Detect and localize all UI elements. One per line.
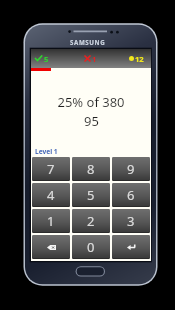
button[interactable]: 6 bbox=[112, 183, 150, 207]
staticText: 95 bbox=[84, 112, 99, 130]
staticText: 7 bbox=[47, 160, 55, 178]
staticText: 12 bbox=[135, 54, 144, 64]
staticText: 6 bbox=[127, 186, 135, 204]
staticText: 5 bbox=[87, 186, 95, 204]
button[interactable]: Coins bbox=[129, 49, 144, 68]
staticText: 1 bbox=[92, 54, 97, 64]
button[interactable]: Enter bbox=[112, 235, 150, 259]
button[interactable]: Correct answers bbox=[35, 49, 49, 68]
staticText: 2 bbox=[87, 212, 95, 230]
button[interactable]: 2 bbox=[72, 209, 110, 233]
staticText: Level 1 bbox=[35, 147, 58, 156]
staticText: 5 bbox=[44, 54, 49, 64]
button[interactable]: 1 bbox=[32, 209, 70, 233]
staticText: 9 bbox=[127, 160, 135, 178]
staticText: 1 bbox=[47, 212, 55, 230]
button[interactable]: Backspace bbox=[32, 235, 70, 259]
button[interactable]: Wrong answers bbox=[85, 49, 97, 68]
staticText: 4 bbox=[47, 186, 55, 204]
button[interactable]: 4 bbox=[32, 183, 70, 207]
staticText: 8 bbox=[87, 160, 95, 178]
button[interactable]: 0 bbox=[72, 235, 110, 259]
button[interactable]: 9 bbox=[112, 157, 150, 181]
staticText: 25% of 380 bbox=[57, 93, 125, 111]
button[interactable]: 8 bbox=[72, 157, 110, 181]
staticText: 3 bbox=[127, 212, 135, 230]
button[interactable]: 7 bbox=[32, 157, 70, 181]
staticText: SAMSUNG bbox=[70, 38, 106, 46]
button[interactable]: 5 bbox=[72, 183, 110, 207]
button[interactable]: 3 bbox=[112, 209, 150, 233]
staticText: 0 bbox=[87, 238, 95, 256]
